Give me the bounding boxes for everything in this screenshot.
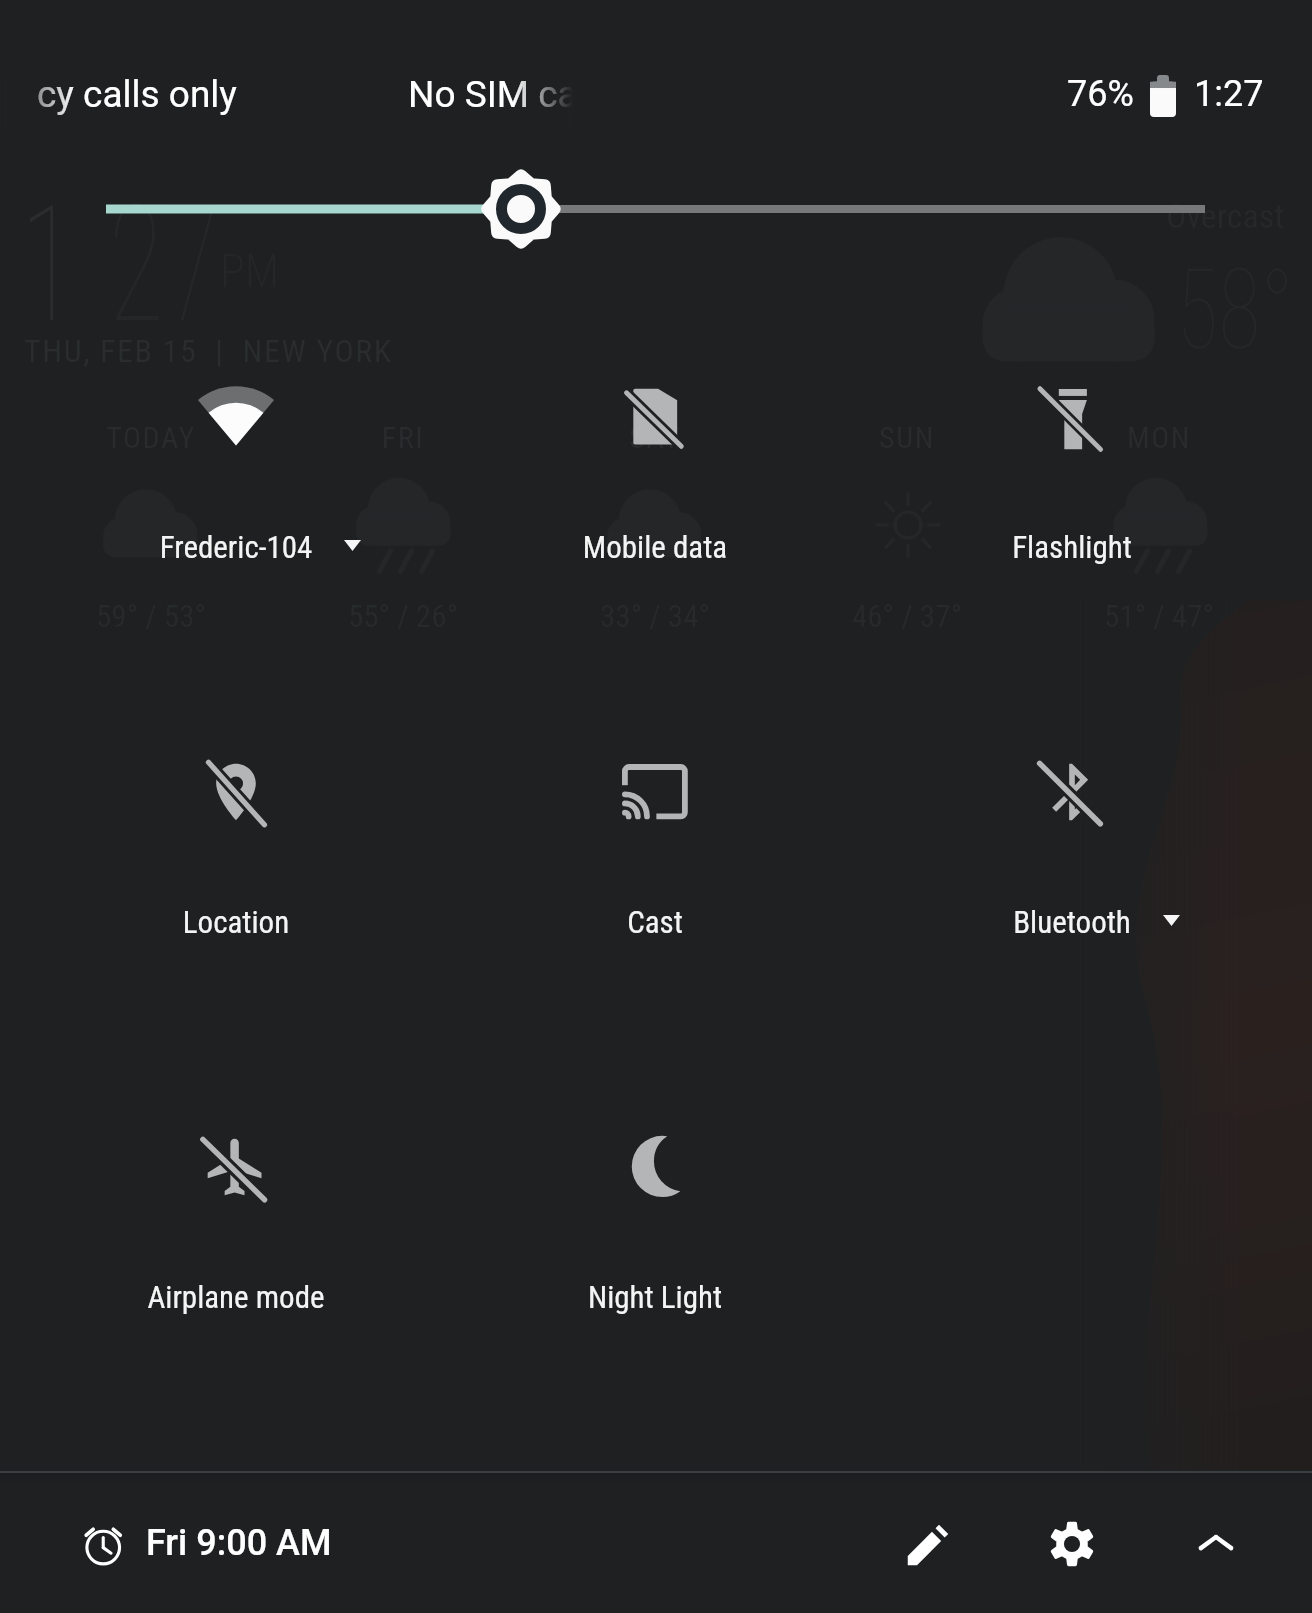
staticText: No SIM card — [408, 73, 573, 116]
staticText: THU, FEB 15 | NEW YORK — [24, 332, 393, 370]
button[interactable]: Mobile data — [446, 325, 864, 622]
staticText: 76% — [1067, 73, 1134, 115]
staticText: 27 — [108, 170, 221, 360]
staticText: TODAY — [31, 420, 271, 455]
button[interactable]: Location — [27, 700, 445, 997]
button[interactable]: Cast — [446, 700, 864, 997]
button[interactable]: Collapse — [1172, 1500, 1260, 1588]
staticText: Cast — [446, 904, 864, 940]
button[interactable]: Bluetooth — [863, 700, 1281, 997]
staticText: 1:27 — [1194, 73, 1264, 115]
staticText: MON — [1039, 420, 1279, 455]
staticText: Night Light — [446, 1279, 864, 1315]
staticText: Flashlight — [863, 529, 1281, 565]
button[interactable]: Night Light — [446, 1075, 864, 1372]
button[interactable]: Flashlight — [863, 325, 1281, 622]
staticText: Fri 9:00 AM — [146, 1522, 332, 1564]
staticText: SAT — [535, 420, 775, 455]
staticText: Overcast — [1166, 196, 1285, 236]
staticText: Bluetooth — [863, 904, 1281, 940]
staticText: cy calls only — [37, 73, 264, 116]
staticText: Frederic-104 — [27, 529, 445, 565]
staticText: Mobile data — [446, 529, 864, 565]
button[interactable]: Frederic-104 — [27, 324, 445, 622]
button[interactable]: Fri 9:00 AM — [80, 1520, 332, 1566]
staticText: Airplane mode — [27, 1279, 445, 1315]
button[interactable]: Edit — [884, 1501, 972, 1589]
button[interactable]: Airplane mode — [27, 1075, 445, 1372]
button[interactable]: Settings — [1028, 1500, 1116, 1588]
staticText: Location — [27, 904, 445, 940]
